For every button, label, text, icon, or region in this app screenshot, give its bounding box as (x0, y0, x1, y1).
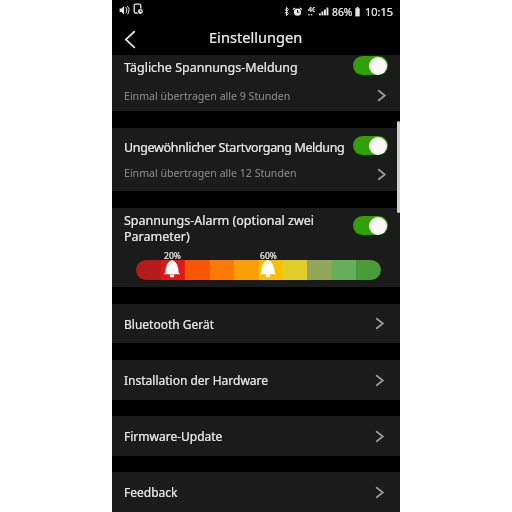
button[interactable]: Einmal übertragen alle 12 Stunden (124, 166, 297, 180)
button[interactable]: Öffnen (371, 85, 391, 105)
button[interactable]: Feedback (112, 472, 400, 512)
button[interactable]: Bluetooth Gerät (112, 304, 400, 343)
staticText: Einstellungen (209, 27, 303, 47)
button[interactable]: Installation der Hardware (112, 360, 400, 400)
button[interactable]: Alarm-Schieberegler (136, 260, 381, 280)
button[interactable]: Zurück (118, 27, 142, 51)
button[interactable]: Einmal übertragen alle 9 Stunden (124, 89, 291, 103)
button[interactable]: Umschalten (353, 136, 388, 155)
button[interactable]: Firmware-Update (112, 416, 400, 456)
button[interactable]: Ungewöhnlicher Startvorgang Meldung (124, 139, 345, 156)
staticText: Installation der Hardware (124, 372, 269, 388)
staticText: Firmware-Update (124, 428, 223, 444)
staticText: Feedback (124, 484, 178, 500)
staticText: Spannungs-Alarm (optional zwei Parameter… (124, 212, 329, 244)
staticText: 20% (164, 250, 181, 262)
staticText: 86% (332, 5, 353, 19)
button[interactable]: Öffnen (371, 164, 391, 184)
staticText: 60% (260, 250, 277, 262)
staticText: Bluetooth Gerät (124, 316, 215, 332)
staticText: 10:15 (365, 4, 394, 19)
staticText: 4G (308, 5, 315, 15)
button[interactable]: Umschalten (353, 216, 388, 235)
button[interactable]: Umschalten (353, 56, 388, 75)
button[interactable]: Tägliche Spannungs-Meldung (124, 59, 298, 76)
